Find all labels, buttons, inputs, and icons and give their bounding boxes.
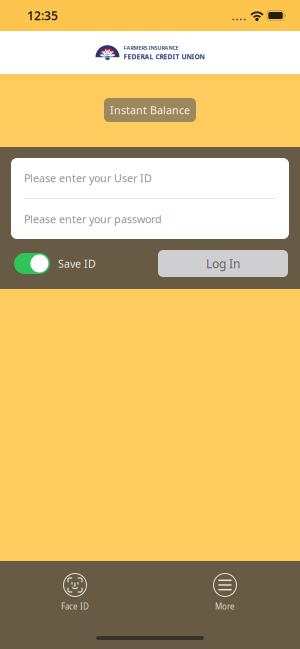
staticText: FARMERS INSURANCE (123, 44, 178, 51)
staticText: Log In (206, 255, 240, 271)
staticText: Please enter your User ID (24, 171, 152, 185)
button[interactable]: Instant Balance (104, 98, 196, 122)
button[interactable]: Log In (158, 250, 288, 277)
staticText: Save ID (58, 256, 96, 271)
button[interactable]: Please enter your User ID (11, 158, 289, 198)
button[interactable]: Face ID (0, 573, 150, 612)
staticText: 12:35 (27, 7, 58, 23)
button[interactable]: More (150, 573, 300, 612)
staticText: Face ID (61, 601, 89, 612)
button[interactable]: Please enter your password (11, 199, 289, 239)
button[interactable]: Save ID (14, 253, 96, 274)
staticText: FEDERAL CREDIT UNION (123, 52, 204, 61)
staticText: More (215, 601, 235, 612)
staticText: Instant Balance (110, 103, 190, 117)
staticText: Please enter your password (24, 212, 162, 226)
